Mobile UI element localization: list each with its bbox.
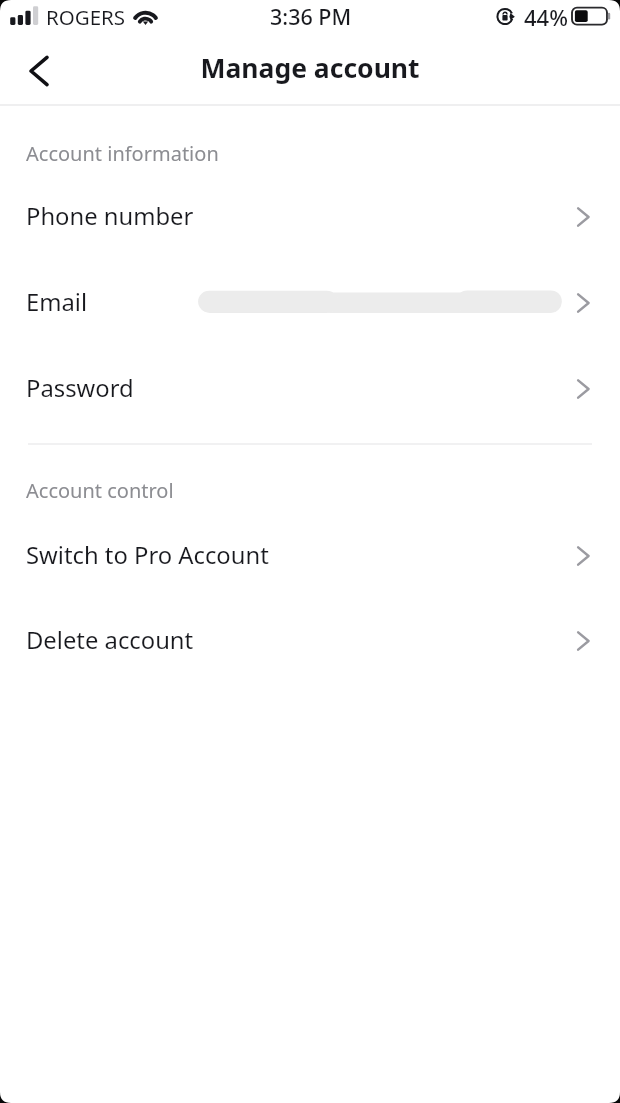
button[interactable]: Password bbox=[0, 346, 620, 432]
button[interactable]: Delete account bbox=[0, 598, 620, 684]
staticText: Account information bbox=[26, 140, 219, 167]
staticText: Manage account bbox=[200, 50, 420, 86]
staticText: 44% bbox=[524, 2, 568, 32]
button[interactable]: Switch to Pro Account bbox=[0, 513, 620, 599]
staticText: Account control bbox=[26, 477, 174, 504]
staticText: Delete account bbox=[26, 624, 194, 656]
button[interactable]: Email bbox=[0, 260, 620, 346]
button[interactable]: Back bbox=[9, 41, 69, 101]
staticText: Phone number bbox=[26, 200, 194, 232]
staticText: Password bbox=[26, 372, 134, 404]
staticText: Email bbox=[26, 286, 88, 318]
button[interactable]: Phone number bbox=[0, 174, 620, 260]
staticText: Switch to Pro Account bbox=[26, 539, 269, 571]
staticText: ROGERS bbox=[46, 3, 126, 31]
staticText: 3:36 PM bbox=[270, 2, 352, 31]
